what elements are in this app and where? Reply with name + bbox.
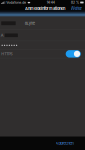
staticText: Vodafone.de <box>6 0 26 4</box>
staticText: 14:44 <box>47 0 55 5</box>
staticText: Weiter <box>70 6 82 11</box>
staticText: Anmeldeinformationen <box>25 6 65 11</box>
button[interactable]: 8Lyne <box>0 17 85 29</box>
button[interactable]: HTTPS <box>0 50 85 58</box>
button[interactable] <box>0 41 85 50</box>
button[interactable]: A <box>0 30 85 41</box>
button[interactable]: Weiter <box>68 5 85 12</box>
staticText: 8Lyne <box>25 21 35 26</box>
staticText: 82 % <box>71 1 79 4</box>
staticText: A <box>1 33 4 38</box>
staticText: Abbrechen <box>55 141 73 146</box>
button[interactable]: Abbrechen <box>55 136 73 150</box>
staticText: HTTPS <box>1 52 12 56</box>
